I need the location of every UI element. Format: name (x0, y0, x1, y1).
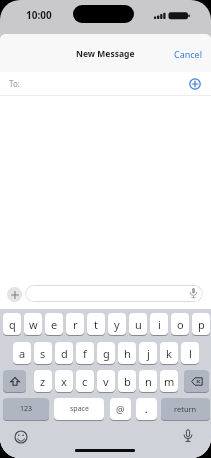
staticText: g (103, 346, 110, 361)
button[interactable]: r (66, 313, 84, 335)
staticText: return (174, 404, 197, 414)
staticText: a (19, 346, 26, 361)
staticText: @ (116, 403, 125, 416)
staticText: c (82, 374, 88, 389)
staticText: p (198, 317, 205, 332)
staticText: 123 (20, 404, 33, 414)
button[interactable]: u (129, 313, 147, 335)
staticText: space (70, 404, 89, 414)
staticText: u (135, 317, 142, 332)
button[interactable]: v (97, 370, 115, 392)
staticText: v (103, 374, 109, 389)
button[interactable]: l (181, 342, 199, 364)
button[interactable]: 123 (3, 398, 49, 420)
button[interactable]: Cancel (168, 45, 208, 63)
staticText: x (61, 374, 67, 389)
staticText: q (9, 317, 16, 332)
button[interactable] (189, 78, 201, 90)
button[interactable]: i (150, 313, 168, 335)
button[interactable] (0, 72, 211, 95)
staticText: o (177, 317, 184, 332)
staticText: s (40, 346, 46, 361)
button[interactable]: e (45, 313, 63, 335)
staticText: New Message (76, 48, 135, 60)
staticText: w (29, 317, 38, 332)
button[interactable] (3, 370, 26, 392)
button[interactable] (183, 429, 193, 444)
button[interactable]: p (192, 313, 210, 335)
button[interactable]: h (118, 342, 136, 364)
staticText: r (73, 317, 78, 332)
button[interactable]: @ (110, 398, 131, 420)
button[interactable]: x (55, 370, 73, 392)
button[interactable]: c (76, 370, 94, 392)
staticText: d (61, 346, 68, 361)
staticText: Cancel (174, 48, 203, 60)
staticText: b (124, 374, 131, 389)
staticText: t (94, 317, 98, 332)
button[interactable]: b (118, 370, 136, 392)
button[interactable]: return (161, 398, 210, 420)
button[interactable] (14, 430, 28, 444)
staticText: m (164, 374, 175, 389)
button[interactable]: f (76, 342, 94, 364)
staticText: . (145, 403, 148, 415)
button[interactable]: s (34, 342, 52, 364)
staticText: j (147, 346, 150, 361)
staticText: k (166, 346, 172, 361)
button[interactable] (184, 370, 209, 392)
button[interactable]: space (54, 398, 104, 420)
button[interactable]: d (55, 342, 73, 364)
button[interactable]: w (24, 313, 42, 335)
button[interactable]: q (3, 313, 21, 335)
button[interactable]: t (87, 313, 105, 335)
staticText: n (145, 374, 152, 389)
button[interactable]: m (160, 370, 178, 392)
button[interactable] (25, 285, 203, 302)
staticText: l (189, 346, 192, 361)
staticText: f (83, 346, 87, 361)
button[interactable] (7, 287, 22, 302)
staticText: h (124, 346, 131, 361)
button[interactable]: k (160, 342, 178, 364)
staticText: z (40, 374, 46, 389)
button[interactable]: . (136, 398, 157, 420)
staticText: i (158, 317, 161, 332)
button[interactable]: z (34, 370, 52, 392)
staticText: 10:00 (26, 8, 52, 22)
button[interactable]: j (139, 342, 157, 364)
button[interactable]: g (97, 342, 115, 364)
staticText: e (51, 317, 58, 332)
button[interactable]: y (108, 313, 126, 335)
button[interactable]: a (13, 342, 31, 364)
staticText: y (114, 317, 120, 332)
button[interactable]: o (171, 313, 189, 335)
button[interactable]: n (139, 370, 157, 392)
staticText: To: (9, 78, 20, 89)
